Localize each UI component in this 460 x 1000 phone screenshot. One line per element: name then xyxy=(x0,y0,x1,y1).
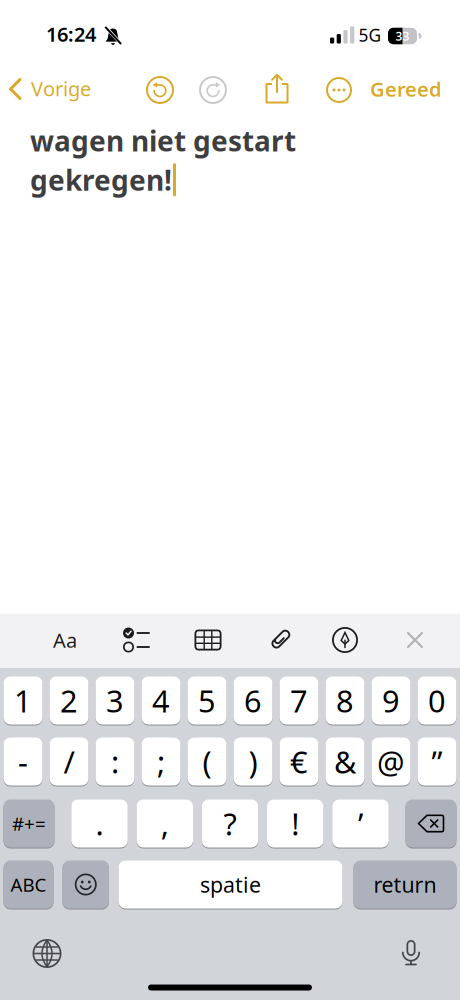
button[interactable]: - xyxy=(3,737,42,785)
staticText: - xyxy=(18,741,28,782)
button[interactable]: ; xyxy=(141,737,180,785)
staticText: ABC xyxy=(10,872,46,897)
button[interactable]: @ xyxy=(371,737,410,785)
staticText: . xyxy=(95,803,103,844)
button[interactable]: / xyxy=(49,737,88,785)
staticText: ’ xyxy=(358,803,363,844)
staticText: € xyxy=(290,741,308,782)
staticText: , xyxy=(161,803,169,844)
staticText: #+= xyxy=(12,811,46,836)
button[interactable]: ” xyxy=(417,737,456,785)
staticText: & xyxy=(334,741,356,782)
staticText: Aa xyxy=(53,627,77,653)
staticText: 6 xyxy=(244,680,262,721)
button[interactable]: #+= xyxy=(3,799,54,847)
button[interactable]: return xyxy=(353,860,456,908)
staticText: ! xyxy=(291,803,299,844)
button[interactable]: ABC xyxy=(3,860,53,908)
button[interactable]: € xyxy=(279,737,318,785)
staticText: Gereed xyxy=(370,76,442,102)
button[interactable]: Share xyxy=(262,73,291,104)
staticText: @ xyxy=(377,741,405,782)
staticText: : xyxy=(111,741,119,782)
button[interactable]: 8 xyxy=(325,676,364,724)
button[interactable]: Redo xyxy=(199,76,227,104)
button[interactable]: Gereed xyxy=(370,76,442,102)
staticText: 5 xyxy=(198,680,216,721)
staticText: ” xyxy=(431,741,442,782)
staticText: 2 xyxy=(60,680,78,721)
button[interactable]: . xyxy=(71,799,128,847)
staticText: 9 xyxy=(382,680,400,721)
button[interactable]: , xyxy=(136,799,193,847)
button[interactable]: : xyxy=(95,737,134,785)
button[interactable]: Emoji xyxy=(62,860,109,908)
button[interactable]: 2 xyxy=(49,676,88,724)
button[interactable]: Undo xyxy=(146,76,174,104)
button[interactable]: spatie xyxy=(118,860,342,908)
button[interactable]: 6 xyxy=(233,676,272,724)
button[interactable]: Checklist xyxy=(122,628,150,652)
staticText: return xyxy=(373,870,436,899)
staticText: 8 xyxy=(336,680,354,721)
staticText: ) xyxy=(248,741,257,782)
staticText: wagen niet gestart xyxy=(30,122,296,159)
button[interactable]: Format xyxy=(53,627,77,653)
button[interactable]: ? xyxy=(202,799,258,847)
button[interactable]: & xyxy=(325,737,364,785)
staticText: 3 xyxy=(106,680,124,721)
button[interactable]: Next keyboard xyxy=(32,939,61,968)
staticText: gekregen! xyxy=(30,161,172,198)
staticText: 1 xyxy=(14,680,32,721)
button[interactable]: Delete xyxy=(405,799,456,847)
button[interactable]: Table xyxy=(194,629,221,650)
button[interactable]: Attach xyxy=(268,627,292,653)
staticText: 16:24 xyxy=(46,21,96,47)
staticText: 5G xyxy=(358,23,381,46)
button[interactable]: Markup xyxy=(332,627,358,653)
staticText: Vorige xyxy=(31,75,91,102)
button[interactable]: ) xyxy=(233,737,272,785)
button[interactable]: ( xyxy=(187,737,226,785)
button[interactable]: Dictation xyxy=(400,939,421,966)
staticText: 4 xyxy=(152,680,170,721)
staticText: ? xyxy=(223,803,236,844)
staticText: 7 xyxy=(290,680,308,721)
button[interactable]: Vorige xyxy=(2,75,97,102)
button[interactable]: 4 xyxy=(141,676,180,724)
staticText: 0 xyxy=(428,680,446,721)
button[interactable]: Dismiss keyboard xyxy=(406,631,423,648)
button[interactable]: 1 xyxy=(3,676,42,724)
button[interactable]: 9 xyxy=(371,676,410,724)
button[interactable]: 3 xyxy=(95,676,134,724)
button[interactable]: More xyxy=(326,77,352,103)
staticText: 33 xyxy=(395,28,409,44)
button[interactable]: ! xyxy=(267,799,323,847)
staticText: / xyxy=(63,741,74,782)
button[interactable]: 7 xyxy=(279,676,318,724)
button[interactable]: ’ xyxy=(332,799,389,847)
staticText: spatie xyxy=(200,870,261,899)
button[interactable]: 5 xyxy=(187,676,226,724)
button[interactable]: 0 xyxy=(417,676,456,724)
staticText: ; xyxy=(157,741,165,782)
staticText: ( xyxy=(202,741,211,782)
